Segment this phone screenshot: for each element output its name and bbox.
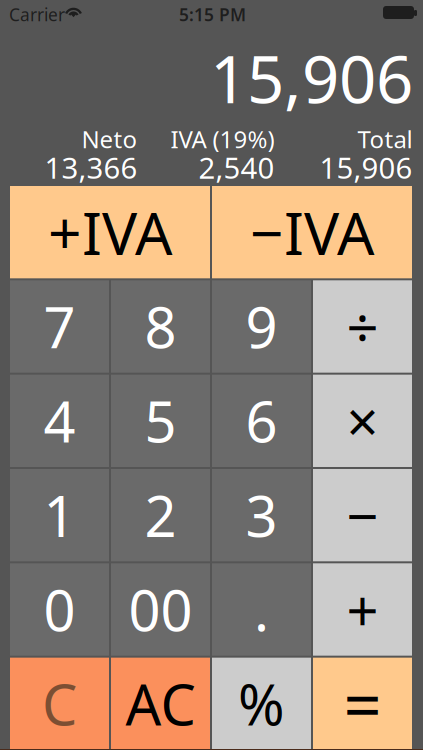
button[interactable]: 1 bbox=[10, 469, 109, 561]
button[interactable]: . bbox=[212, 563, 311, 656]
staticText: 15,906 bbox=[210, 35, 413, 121]
button[interactable]: 5 bbox=[111, 375, 210, 467]
staticText: − bbox=[346, 478, 378, 552]
staticText: 5 bbox=[144, 384, 176, 458]
button[interactable]: = bbox=[313, 658, 412, 750]
staticText: 3 bbox=[245, 478, 277, 552]
staticText: 5:15 PM bbox=[179, 3, 246, 26]
staticText: 2 bbox=[144, 478, 176, 552]
staticText: ÷ bbox=[346, 289, 378, 364]
staticText: 1 bbox=[43, 478, 75, 552]
button[interactable]: 6 bbox=[212, 375, 311, 467]
staticText: 9 bbox=[245, 289, 277, 364]
button[interactable]: AC bbox=[111, 658, 210, 750]
button[interactable]: 00 bbox=[111, 563, 210, 656]
button[interactable]: % bbox=[212, 658, 311, 750]
staticText: +IVA bbox=[48, 193, 172, 271]
staticText: × bbox=[346, 384, 378, 458]
button[interactable]: C bbox=[10, 658, 109, 750]
button[interactable]: 0 bbox=[10, 563, 109, 656]
staticText: −IVA bbox=[250, 193, 374, 271]
staticText: . bbox=[254, 572, 269, 647]
staticText: Carrier bbox=[9, 3, 65, 26]
staticText: 4 bbox=[43, 384, 75, 458]
button[interactable]: × bbox=[313, 375, 412, 467]
button[interactable]: +IVA bbox=[10, 186, 210, 278]
staticText: 2,540 bbox=[198, 148, 274, 187]
staticText: 00 bbox=[128, 572, 192, 647]
button[interactable]: 4 bbox=[10, 375, 109, 467]
button[interactable]: 2 bbox=[111, 469, 210, 561]
staticText: 0 bbox=[43, 572, 75, 647]
staticText: % bbox=[238, 667, 285, 741]
staticText: IVA (19%) bbox=[170, 123, 274, 155]
staticText: 7 bbox=[43, 289, 75, 364]
button[interactable]: ÷ bbox=[313, 280, 412, 373]
staticText: C bbox=[42, 667, 77, 741]
staticText: 6 bbox=[245, 384, 277, 458]
staticText: + bbox=[346, 572, 378, 647]
button[interactable]: −IVA bbox=[212, 186, 412, 278]
button[interactable]: 3 bbox=[212, 469, 311, 561]
button[interactable]: + bbox=[313, 563, 412, 656]
staticText: Neto bbox=[81, 123, 137, 155]
staticText: 8 bbox=[144, 289, 176, 364]
button[interactable]: − bbox=[313, 469, 412, 561]
button[interactable]: 7 bbox=[10, 280, 109, 373]
button[interactable]: 8 bbox=[111, 280, 210, 373]
staticText: 15,906 bbox=[319, 148, 412, 187]
staticText: = bbox=[343, 659, 381, 748]
staticText: 13,366 bbox=[44, 148, 137, 187]
staticText: AC bbox=[125, 667, 195, 741]
staticText: Total bbox=[357, 123, 412, 155]
button[interactable]: 9 bbox=[212, 280, 311, 373]
